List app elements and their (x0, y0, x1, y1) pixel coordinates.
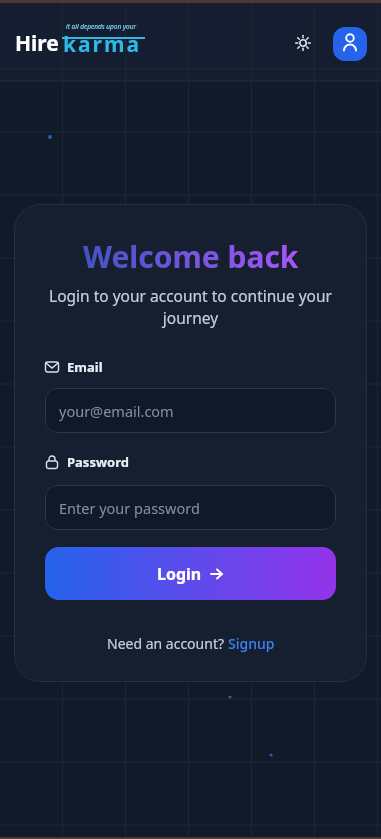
staticText: karma (63, 30, 142, 59)
staticText: Welcome back (83, 236, 299, 277)
staticText: Enter your password (59, 498, 200, 518)
staticText: Hire (15, 29, 59, 58)
staticText: Password (67, 453, 129, 471)
staticText: it all depends upon your (66, 22, 136, 31)
button[interactable] (293, 33, 313, 53)
staticText: Login to your account to continue your j… (49, 285, 332, 328)
button[interactable]: Need an account? (107, 634, 275, 653)
staticText: Need an account? (107, 634, 228, 653)
button[interactable]: Enter your password (45, 485, 336, 530)
button[interactable]: your@email.com (45, 388, 336, 433)
staticText: Signup (228, 634, 275, 653)
staticText: Login (157, 563, 202, 585)
staticText: Email (67, 358, 103, 376)
button[interactable] (333, 27, 367, 61)
staticText: your@email.com (59, 401, 174, 421)
button[interactable]: Login (45, 547, 336, 600)
